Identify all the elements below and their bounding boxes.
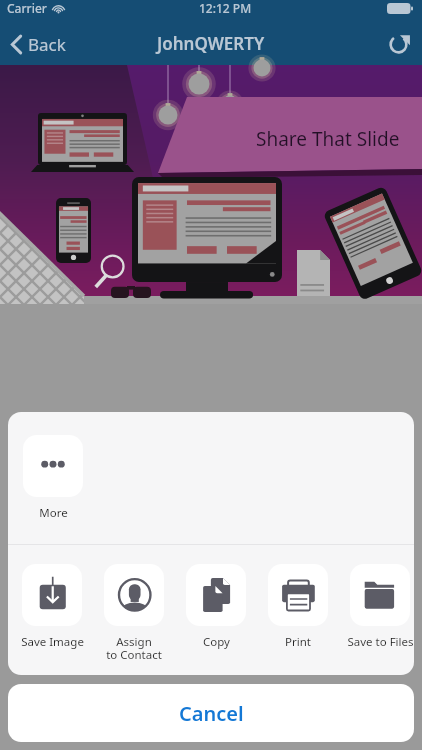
staticText: More [39, 505, 68, 521]
staticText: Print [285, 634, 311, 650]
staticText: Share That Slide [256, 126, 400, 152]
button[interactable]: Back [0, 24, 76, 65]
staticText: Back [28, 33, 66, 56]
button[interactable]: Save to Files [350, 564, 410, 626]
staticText: Cancel [179, 700, 244, 727]
staticText: Assign to Contact [106, 634, 162, 663]
staticText: Carrier [7, 0, 47, 16]
button[interactable]: Print [268, 564, 328, 626]
button[interactable]: Cancel [8, 684, 414, 742]
button[interactable]: Save Image [22, 564, 82, 626]
staticText: 12:12 PM [199, 0, 252, 16]
button[interactable]: More [23, 435, 83, 497]
staticText: Save Image [21, 634, 84, 650]
staticText: Copy [203, 634, 230, 650]
button[interactable]: Assign to Contact [104, 564, 164, 626]
button[interactable]: Copy [186, 564, 246, 626]
button[interactable]: Refresh [375, 24, 422, 65]
staticText: Save to Files [347, 634, 414, 650]
staticText: JohnQWERTY [157, 32, 265, 55]
